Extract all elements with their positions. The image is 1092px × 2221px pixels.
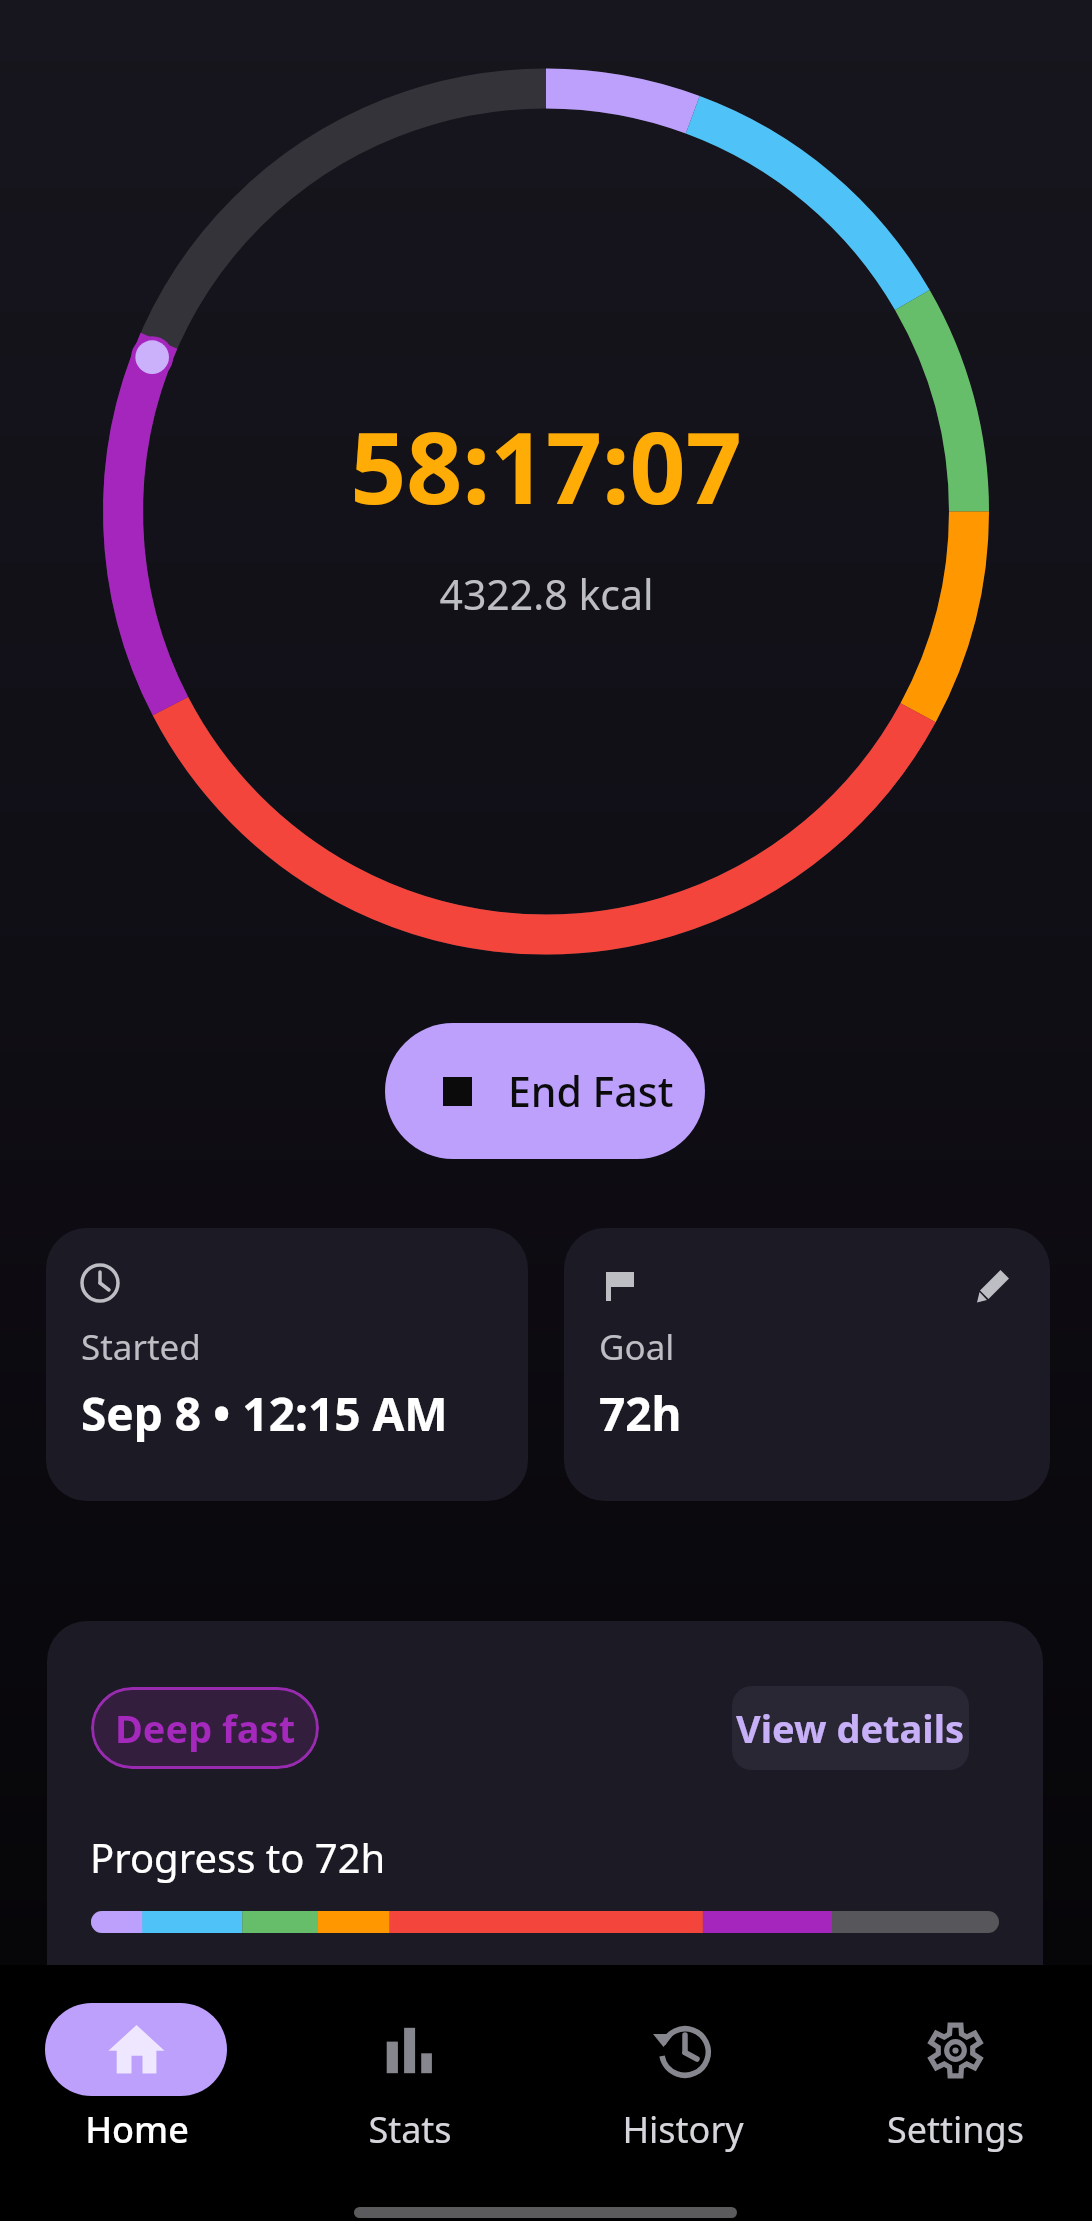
staticText: Progress to 72h (90, 1830, 386, 1884)
staticText: End Fast (508, 1063, 674, 1119)
button[interactable]: End Fast (385, 1023, 705, 1159)
staticText: Sep 8 • 12:15 AM (81, 1382, 448, 1445)
staticText: Deep fast (115, 1702, 296, 1754)
button[interactable]: View details (732, 1686, 969, 1770)
staticText: History (622, 2105, 744, 2154)
staticText: 58:17:07 (350, 399, 742, 532)
button[interactable]: Stats (273, 1983, 546, 2163)
button[interactable]: Home (0, 1983, 273, 2163)
button[interactable]: Edit goal (564, 1228, 1050, 1501)
staticText: View details (736, 1702, 965, 1754)
staticText: Goal (599, 1323, 675, 1371)
button[interactable]: Edit goal (977, 1270, 1011, 1304)
staticText: Stats (368, 2105, 452, 2154)
staticText: Started (81, 1323, 201, 1371)
button[interactable]: History (546, 1983, 819, 2163)
staticText: Settings (887, 2105, 1024, 2154)
button[interactable]: Started (46, 1228, 528, 1501)
button[interactable]: Deep fast (91, 1687, 319, 1769)
staticText: 4322.8 kcal (439, 566, 654, 622)
button[interactable]: Settings (819, 1983, 1092, 2163)
staticText: Home (85, 2105, 189, 2154)
staticText: 72h (599, 1382, 682, 1445)
button[interactable]: Deep fast (47, 1621, 1043, 2021)
